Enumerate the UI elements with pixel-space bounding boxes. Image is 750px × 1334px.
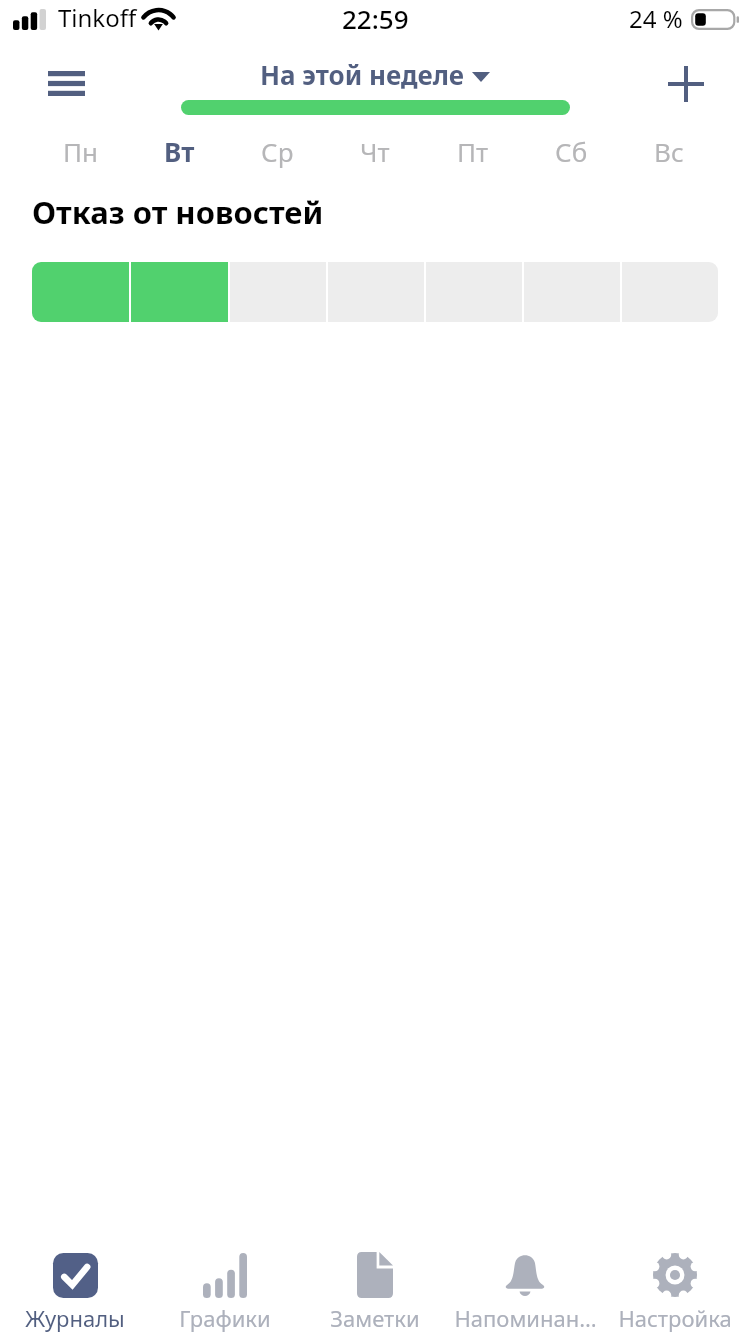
button[interactable]: Ср <box>228 128 326 172</box>
button[interactable]: Настройка <box>600 1234 750 1334</box>
staticText: Пн <box>63 134 99 169</box>
staticText: Пт <box>457 134 489 169</box>
staticText: Чт <box>360 134 390 169</box>
button[interactable]: Заметки <box>300 1234 450 1334</box>
button[interactable]: Вс <box>620 128 718 172</box>
button[interactable]: Сб <box>522 128 620 172</box>
staticText: 24 % <box>629 2 683 35</box>
staticText: Графики <box>179 1303 271 1333</box>
staticText: Сб <box>555 134 588 169</box>
staticText: Вт <box>164 134 195 169</box>
staticText: Вс <box>654 134 684 169</box>
button[interactable]: Пн <box>32 128 130 172</box>
button[interactable]: Напоминан… <box>450 1234 600 1334</box>
button[interactable]: Menu <box>39 60 93 106</box>
staticText: Журналы <box>25 1303 125 1333</box>
button[interactable]: Weekly progress: 2 of 7 days done <box>32 262 718 322</box>
button[interactable]: Журналы <box>0 1234 150 1334</box>
button[interactable]: Пт <box>424 128 522 172</box>
button[interactable]: Вт <box>130 128 228 172</box>
button[interactable]: Отказ от новостей <box>32 191 324 233</box>
staticText: Ср <box>261 134 294 169</box>
staticText: Настройка <box>618 1303 732 1333</box>
button[interactable]: На этой неделе <box>256 55 494 94</box>
staticText: Заметки <box>330 1303 420 1333</box>
staticText: Напоминан… <box>454 1303 597 1333</box>
staticText: На этой неделе <box>260 57 465 92</box>
button[interactable]: Add <box>658 56 714 112</box>
staticText: 22:59 <box>342 1 409 36</box>
staticText: Tinkoff <box>58 1 137 34</box>
button[interactable]: Чт <box>326 128 424 172</box>
button[interactable]: Графики <box>150 1234 300 1334</box>
